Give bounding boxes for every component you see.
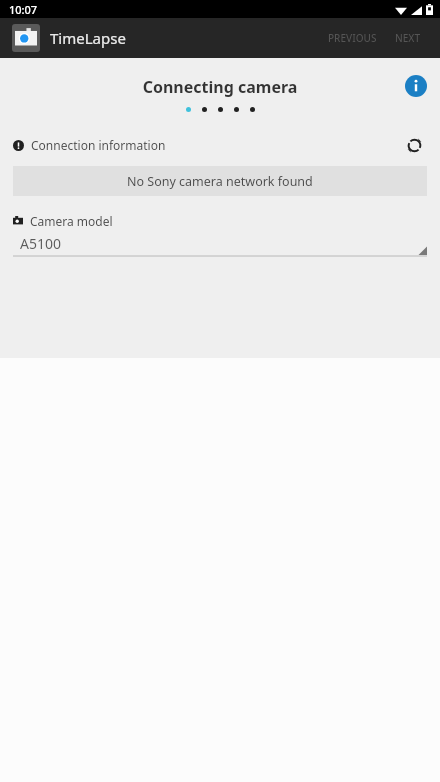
staticText: A5100	[20, 234, 61, 253]
staticText: NEXT	[395, 31, 421, 45]
staticText: Connection information	[31, 137, 166, 153]
staticText: TimeLapse	[50, 28, 126, 48]
staticText: Camera model	[30, 213, 113, 229]
staticText: 10:07	[9, 2, 38, 17]
staticText: PREVIOUS	[328, 31, 377, 45]
button[interactable]: TimeLapse app icon	[12, 24, 40, 52]
button[interactable]: NEXT	[388, 25, 428, 51]
button[interactable]: A5100	[13, 233, 427, 257]
button[interactable]: Information	[404, 74, 428, 98]
button[interactable]: PREVIOUS	[321, 25, 384, 51]
button[interactable]: Refresh	[401, 132, 427, 158]
staticText: No Sony camera network found	[127, 173, 313, 190]
staticText: Connecting camera	[0, 76, 440, 98]
